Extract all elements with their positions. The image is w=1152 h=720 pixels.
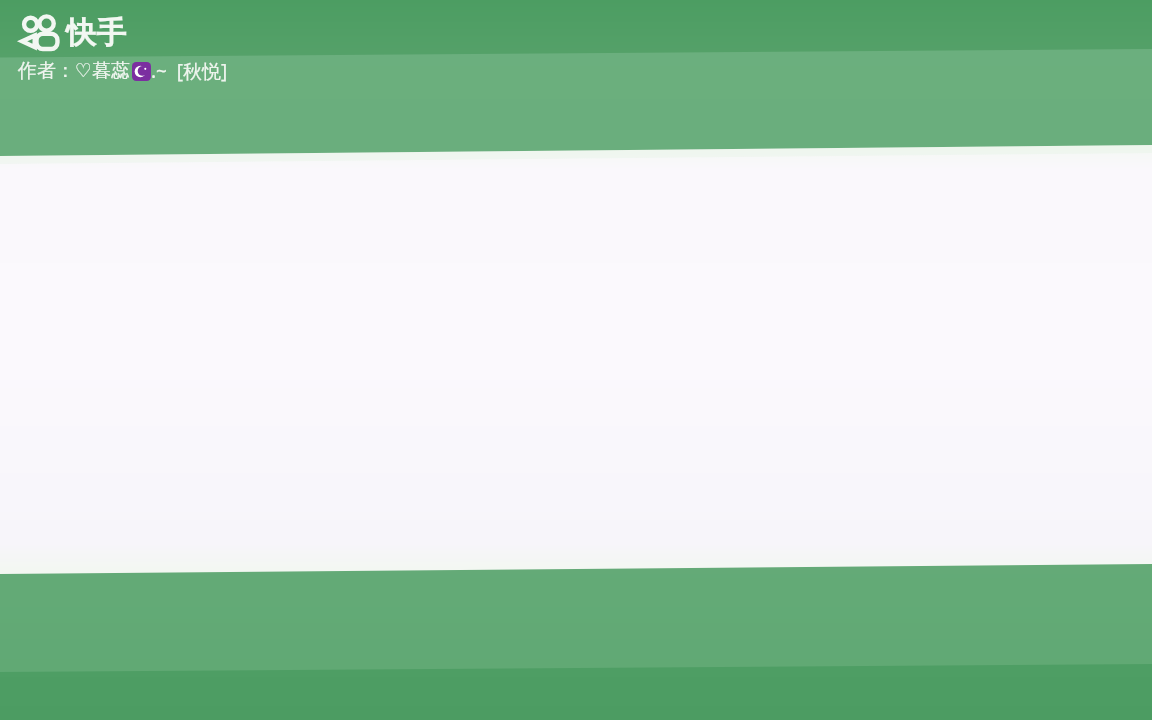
staticText: 作者：♡暮蕊 xyxy=(18,59,131,83)
button[interactable]: Kuaishou xyxy=(18,14,126,52)
staticText: .~ [秋悦] xyxy=(151,58,228,84)
staticText: 快手 xyxy=(66,14,126,52)
button[interactable]: 作者：♡暮蕊 xyxy=(18,58,228,84)
